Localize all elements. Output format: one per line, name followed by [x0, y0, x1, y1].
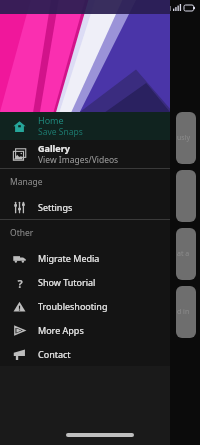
other: Settings: [13, 201, 26, 214]
button[interactable]: Migrate Media: [0, 246, 170, 270]
staticText: Other: [10, 227, 34, 239]
button[interactable]: More Apps: [0, 318, 170, 342]
staticText: Home: [38, 114, 64, 126]
staticText: Save Snaps: [38, 126, 83, 138]
staticText: Contact: [38, 348, 71, 360]
staticText: at a: [177, 249, 190, 259]
staticText: Settings: [38, 201, 73, 213]
other: Migrate Media: [13, 252, 26, 265]
button[interactable]: Gallery: [0, 140, 170, 168]
staticText: Manage: [10, 176, 43, 188]
button[interactable]: Show Tutorial: [0, 270, 170, 294]
other: Gallery: [13, 148, 26, 161]
staticText: d in: [177, 307, 190, 317]
staticText: More Apps: [38, 324, 84, 336]
staticText: Gallery: [38, 142, 70, 154]
other: Home: [13, 120, 26, 133]
other: Show Tutorial: [13, 276, 26, 289]
staticText: View Images/Videos: [38, 154, 119, 166]
other: More Apps: [13, 324, 26, 337]
staticText: ?: [17, 276, 23, 289]
other: Contact: [13, 348, 26, 361]
staticText: Show Tutorial: [38, 276, 96, 288]
staticText: usly: [177, 133, 191, 143]
staticText: Migrate Media: [38, 252, 100, 264]
other: Troubleshooting: [13, 300, 26, 313]
staticText: Troubleshooting: [38, 300, 108, 312]
button[interactable]: Settings: [0, 195, 170, 219]
button[interactable]: Home: [0, 112, 170, 140]
button[interactable]: Contact: [0, 342, 170, 366]
button[interactable]: Troubleshooting: [0, 294, 170, 318]
